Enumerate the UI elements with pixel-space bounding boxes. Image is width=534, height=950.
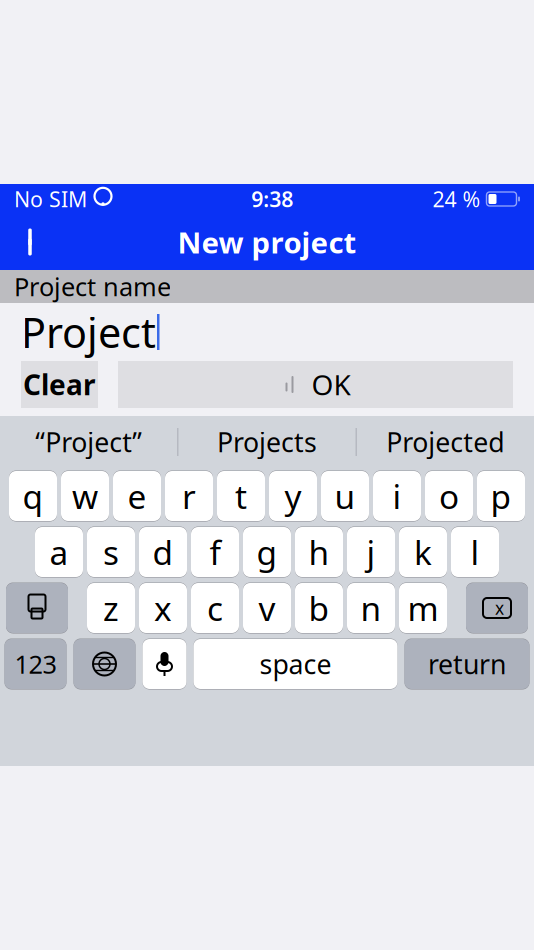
button[interactable]: s (87, 526, 135, 577)
staticText: b (308, 586, 329, 630)
staticText: c (207, 586, 223, 630)
staticText: Clear (23, 366, 96, 403)
staticText: m (407, 586, 438, 630)
staticText: l (470, 530, 479, 574)
staticText: j (366, 530, 375, 574)
staticText: h (308, 530, 329, 574)
staticText: g (256, 530, 277, 574)
staticText: Projected (386, 424, 504, 460)
staticText: n (360, 586, 381, 630)
button[interactable]: o (425, 470, 473, 521)
staticText: 9:38 (251, 185, 293, 213)
button[interactable]: Projects (178, 419, 356, 465)
button[interactable]: g (243, 526, 291, 577)
button[interactable]: c (191, 582, 239, 633)
staticText: n (360, 586, 381, 630)
staticText: Projects (217, 424, 317, 460)
button[interactable]: d (139, 526, 187, 577)
staticText: o (439, 474, 459, 518)
button[interactable]: Next keyboard (73, 638, 135, 689)
button[interactable]: OK (118, 361, 513, 408)
staticText: r (182, 474, 196, 518)
staticText: No SIM (14, 185, 87, 213)
button[interactable]: p (477, 470, 525, 521)
staticText: g (256, 530, 277, 574)
staticText: u (334, 474, 355, 518)
button[interactable]: h (295, 526, 343, 577)
staticText: q (22, 474, 43, 518)
button[interactable]: 123 (4, 638, 66, 689)
staticText: y (284, 474, 301, 518)
staticText: v (258, 586, 275, 630)
button[interactable]: i (373, 470, 421, 521)
staticText: p (490, 474, 511, 518)
button[interactable]: Clear (21, 361, 98, 408)
button[interactable]: e (113, 470, 161, 521)
button[interactable]: b (295, 582, 343, 633)
staticText: b (308, 586, 329, 630)
staticText: j (366, 530, 375, 574)
button[interactable]: l (451, 526, 499, 577)
staticText: o (439, 474, 459, 518)
staticText: w (72, 474, 98, 518)
button[interactable]: t (217, 470, 265, 521)
button[interactable]: Projected (357, 419, 534, 465)
staticText: i (392, 474, 401, 518)
button[interactable]: return (404, 638, 529, 689)
staticText: 123 (14, 647, 56, 681)
button[interactable]: z (87, 582, 135, 633)
staticText: m (407, 586, 438, 630)
staticText: i (392, 474, 401, 518)
button[interactable]: Shift (6, 582, 68, 633)
button[interactable]: r (165, 470, 213, 521)
staticText: z (103, 586, 119, 630)
staticText: return (428, 646, 506, 682)
button[interactable]: x (139, 582, 187, 633)
button[interactable]: m (399, 582, 447, 633)
button[interactable]: a (35, 526, 83, 577)
staticText: d (152, 530, 173, 574)
staticText: New project (177, 222, 356, 261)
button[interactable]: space (193, 638, 397, 689)
staticText: “Project” (35, 424, 142, 460)
staticText: x (154, 586, 172, 630)
staticText: q (22, 474, 43, 518)
staticText: f (209, 530, 220, 574)
staticText: 24 % (432, 185, 480, 213)
staticText: a (49, 530, 68, 574)
staticText: y (284, 474, 301, 518)
staticText: Project name (14, 270, 171, 303)
button[interactable]: f (191, 526, 239, 577)
button[interactable]: Dictate (142, 638, 186, 689)
staticText: u (334, 474, 355, 518)
staticText: x (495, 596, 504, 619)
staticText: k (414, 530, 432, 574)
staticText: a (49, 530, 68, 574)
button[interactable]: Delete (466, 582, 528, 633)
staticText: s (103, 530, 119, 574)
button[interactable]: k (399, 526, 447, 577)
staticText: t (235, 474, 247, 518)
staticText: r (182, 474, 196, 518)
button[interactable]: j (347, 526, 395, 577)
staticText: e (127, 474, 146, 518)
staticText: l (470, 530, 479, 574)
staticText: e (127, 474, 146, 518)
button[interactable]: “Project” (0, 419, 177, 465)
staticText: w (72, 474, 98, 518)
staticText: s (103, 530, 119, 574)
button[interactable]: w (61, 470, 109, 521)
staticText: OK (311, 366, 350, 403)
staticText: z (103, 586, 119, 630)
staticText: Project (21, 305, 156, 359)
staticText: h (308, 530, 329, 574)
button[interactable]: Back (6, 218, 54, 266)
button[interactable]: v (243, 582, 291, 633)
button[interactable]: y (269, 470, 317, 521)
staticText: return (428, 646, 506, 682)
button[interactable]: u (321, 470, 369, 521)
staticText: c (207, 586, 223, 630)
button[interactable]: q (9, 470, 57, 521)
staticText: t (235, 474, 247, 518)
button[interactable]: n (347, 582, 395, 633)
